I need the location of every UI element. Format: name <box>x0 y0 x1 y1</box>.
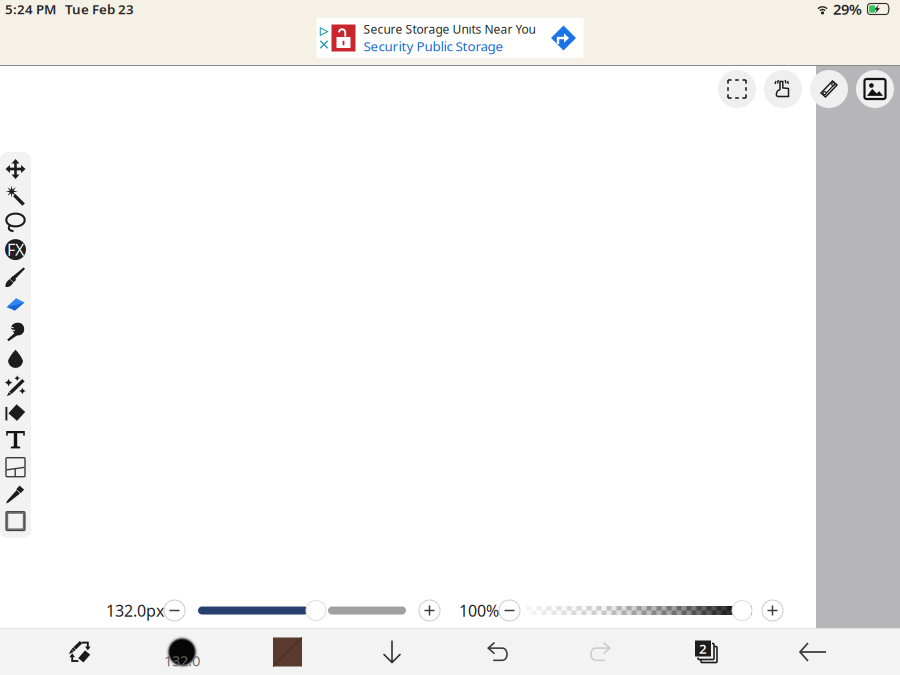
button[interactable]: Pan <box>764 70 802 108</box>
button[interactable]: Layers <box>695 640 718 663</box>
button[interactable]: Increase <box>419 600 440 621</box>
button[interactable]: Increase <box>762 600 783 621</box>
button[interactable]: Back <box>795 638 831 666</box>
button[interactable]: Layers <box>5 457 26 478</box>
button[interactable]: Lasso <box>5 212 25 232</box>
button[interactable]: Pencil <box>5 376 26 397</box>
button[interactable]: Text <box>5 429 26 450</box>
button[interactable]: Effects <box>5 239 26 260</box>
staticText: 132.0 <box>164 651 200 670</box>
staticText: 100% <box>459 600 499 621</box>
staticText: 132.0px <box>106 600 164 621</box>
button[interactable]: Blur <box>5 349 25 369</box>
button[interactable]: Decrease <box>164 600 185 621</box>
staticText: FX <box>7 239 24 260</box>
button[interactable]: Undo <box>483 637 515 666</box>
button[interactable]: Color <box>273 637 302 666</box>
staticText: Security Public Storage <box>363 37 503 55</box>
button[interactable]: Download <box>379 639 405 665</box>
button[interactable]: Color picker <box>5 484 25 504</box>
button[interactable]: Canvas <box>5 511 25 531</box>
staticText: 2 <box>699 640 707 657</box>
button[interactable]: Swap brush and eraser <box>68 640 92 664</box>
button[interactable]: Magic wand <box>5 186 25 206</box>
staticText: Secure Storage Units Near You <box>363 21 535 37</box>
button[interactable]: Eraser <box>810 70 848 108</box>
button[interactable]: Brush <box>5 267 26 288</box>
button[interactable]: Image <box>856 70 894 108</box>
button[interactable]: Move <box>5 159 25 179</box>
button[interactable]: Eraser <box>5 294 25 314</box>
button[interactable]: Redo <box>583 637 615 666</box>
button[interactable]: Decrease <box>499 600 520 621</box>
button[interactable]: Select <box>718 70 756 108</box>
button[interactable]: Shapes <box>5 403 26 422</box>
button[interactable]: Smudge <box>5 321 26 342</box>
button[interactable]: Brush size <box>165 635 199 669</box>
staticText: 29% <box>833 0 862 19</box>
staticText: 5:24 PM Tue Feb 23 <box>5 0 134 18</box>
